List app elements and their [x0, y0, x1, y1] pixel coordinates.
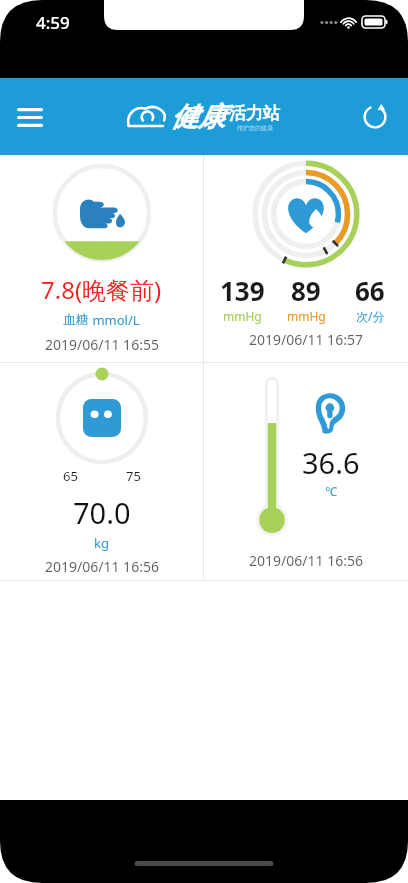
staticText: 66	[355, 273, 385, 308]
staticText: 70.0	[73, 493, 131, 532]
staticText: 89	[291, 273, 321, 308]
staticText: 4:59	[36, 11, 70, 34]
staticText: kg	[94, 534, 109, 552]
button[interactable]: 65	[0, 363, 203, 580]
button[interactable]: 36.6	[204, 363, 408, 580]
staticText: 2019/06/11 16:57	[249, 330, 363, 349]
button[interactable]: Refresh	[352, 94, 398, 140]
staticText: 75	[126, 467, 141, 485]
staticText: 36.6	[302, 443, 360, 482]
staticText: 65	[63, 467, 78, 485]
button[interactable]: 139	[204, 155, 408, 362]
button[interactable]: Menu	[6, 93, 54, 141]
staticText: 139	[220, 273, 265, 308]
staticText: mmHg	[287, 308, 326, 324]
staticText: mmHg	[223, 308, 262, 324]
staticText: ℃	[325, 483, 337, 499]
staticText: 2019/06/11 16:56	[249, 551, 363, 570]
staticText: 维护您的健康	[237, 124, 273, 132]
staticText: 7.8(晚餐前)	[41, 273, 162, 306]
staticText: 2019/06/11 16:56	[45, 557, 159, 576]
staticText: 血糖	[63, 311, 89, 327]
staticText: 2019/06/11 16:55	[45, 335, 159, 354]
staticText: 次/分	[356, 308, 385, 324]
staticText: mmol/L	[89, 311, 140, 329]
staticText: 健康	[171, 100, 225, 134]
staticText: 活力站	[229, 103, 280, 124]
button[interactable]: 7.8(晚餐前)	[0, 155, 203, 362]
